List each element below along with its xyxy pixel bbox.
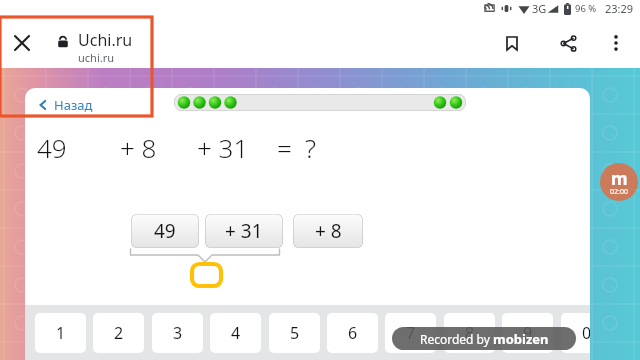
- staticText: 6: [348, 322, 358, 344]
- staticText: 02:00: [610, 187, 628, 197]
- button[interactable]: Close: [10, 31, 34, 55]
- staticText: + 31: [225, 218, 263, 244]
- button[interactable]: 4: [210, 313, 261, 353]
- staticText: 0: [582, 322, 590, 344]
- button[interactable]: 7: [385, 313, 436, 353]
- staticText: 23:29: [605, 1, 634, 16]
- staticText: 3: [173, 322, 183, 344]
- button[interactable]: Answer drop slot: [192, 264, 221, 286]
- staticText: + 8: [315, 218, 342, 244]
- staticText: + 8: [120, 130, 157, 165]
- button[interactable]: Назад: [33, 92, 97, 118]
- staticText: uchi.ru: [78, 50, 115, 65]
- staticText: m: [611, 167, 628, 190]
- staticText: Назад: [54, 96, 93, 114]
- staticText: 49: [154, 218, 176, 244]
- staticText: 49: [37, 130, 67, 165]
- button[interactable]: 2: [93, 313, 144, 353]
- staticText: 9: [523, 322, 533, 344]
- staticText: 7: [406, 322, 416, 344]
- button[interactable]: + 31: [205, 214, 283, 248]
- button[interactable]: 49: [131, 214, 199, 248]
- staticText: 96 %: [575, 2, 597, 15]
- button[interactable]: Bookmark: [500, 31, 524, 55]
- button[interactable]: 8: [444, 313, 495, 353]
- button[interactable]: + 8: [293, 214, 363, 248]
- button[interactable]: Share: [556, 31, 580, 55]
- staticText: Uchi.ru: [78, 29, 133, 51]
- button[interactable]: Mobizen recorder: [600, 163, 638, 201]
- staticText: + 31: [197, 130, 249, 165]
- staticText: 2: [114, 322, 124, 344]
- staticText: Recorded by: [420, 331, 493, 347]
- button[interactable]: 1: [35, 313, 86, 353]
- staticText: mobizen: [493, 330, 549, 348]
- staticText: ?: [305, 130, 316, 165]
- button[interactable]: More options: [604, 31, 628, 55]
- staticText: 1: [56, 322, 66, 344]
- button[interactable]: 3: [152, 313, 203, 353]
- button[interactable]: 6: [327, 313, 378, 353]
- staticText: 5: [290, 322, 300, 344]
- staticText: 8: [465, 322, 475, 344]
- button[interactable]: 9: [502, 313, 553, 353]
- staticText: 3G: [532, 1, 547, 16]
- staticText: 4: [231, 322, 241, 344]
- button[interactable]: 0: [561, 313, 590, 353]
- staticText: =: [277, 130, 292, 165]
- button[interactable]: 5: [269, 313, 320, 353]
